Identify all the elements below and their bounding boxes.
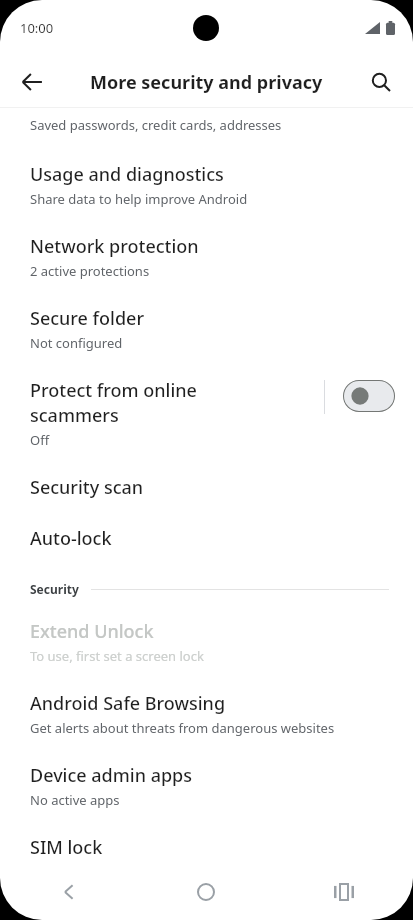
- staticText: Saved passwords, credit cards, addresses: [30, 116, 282, 134]
- button[interactable]: Network protection: [0, 210, 413, 282]
- staticText: Security scan: [30, 475, 144, 500]
- staticText: Auto-lock: [30, 526, 112, 551]
- staticText: Get alerts about threats from dangerous …: [30, 719, 335, 737]
- button[interactable]: Protect from online: [0, 354, 413, 451]
- button[interactable]: Usage and diagnostics: [0, 138, 413, 210]
- button[interactable]: Security scan: [0, 451, 413, 502]
- button[interactable]: Recent apps: [275, 864, 413, 920]
- staticText: Security: [30, 581, 79, 597]
- staticText: Not configured: [30, 334, 123, 352]
- staticText: No active apps: [30, 791, 120, 809]
- button[interactable]: Auto-lock: [0, 502, 413, 553]
- button[interactable]: Search: [359, 60, 403, 104]
- staticText: To use, first set a screen lock: [30, 647, 204, 665]
- button[interactable]: Secure folder: [0, 282, 413, 354]
- staticText: 2 active protections: [30, 262, 150, 280]
- staticText: Android Safe Browsing: [30, 691, 226, 716]
- staticText: SIM lock: [30, 835, 103, 860]
- staticText: Extend Unlock: [30, 619, 154, 644]
- button[interactable]: Back: [10, 60, 54, 104]
- staticText: Usage and diagnostics: [30, 162, 224, 187]
- staticText: Secure folder: [30, 306, 145, 331]
- staticText: Network protection: [30, 234, 199, 259]
- button[interactable]: Protect from online scammers toggle: [343, 380, 395, 412]
- staticText: Share data to help improve Android: [30, 190, 248, 208]
- staticText: scammers: [30, 403, 119, 428]
- staticText: Device admin apps: [30, 763, 193, 788]
- staticText: Off: [30, 431, 50, 449]
- button[interactable]: SIM lock: [0, 811, 413, 862]
- staticText: Protect from online: [30, 378, 197, 403]
- button[interactable]: Device admin apps: [0, 739, 413, 811]
- staticText: 10:00: [20, 19, 54, 37]
- button[interactable]: Android Safe Browsing: [0, 667, 413, 739]
- staticText: More security and privacy: [90, 70, 323, 95]
- button[interactable]: Back: [0, 864, 137, 920]
- button[interactable]: Saved passwords, credit cards, addresses: [0, 112, 413, 138]
- button[interactable]: Extend Unlock: [0, 597, 413, 667]
- button[interactable]: Home: [137, 864, 275, 920]
